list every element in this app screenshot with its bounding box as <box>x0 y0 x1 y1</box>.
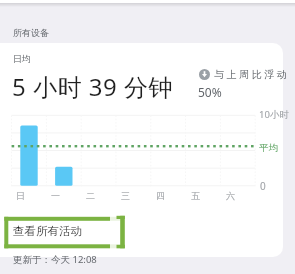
staticText: 日 <box>16 190 25 201</box>
staticText: 5 小时 39 分钟 <box>12 70 173 103</box>
staticText: 50% <box>198 84 222 100</box>
staticText: 平均 <box>259 142 278 154</box>
staticText: 六 <box>226 190 235 201</box>
staticText: 0 <box>260 179 266 193</box>
button[interactable]: 所有设备 <box>0 22 140 42</box>
staticText: 所有设备 <box>13 27 49 38</box>
staticText: 一 <box>51 190 60 201</box>
staticText: 三 <box>121 190 130 201</box>
staticText: 日均 <box>13 53 31 64</box>
staticText: 五 <box>191 190 200 201</box>
staticText: 二 <box>86 190 95 201</box>
staticText: 更新于：今天 12:08 <box>13 253 97 266</box>
staticText: 四 <box>156 190 165 201</box>
staticText: 查看所有活动 <box>13 224 82 238</box>
button[interactable]: 查看所有活动 <box>8 221 112 243</box>
staticText: 10小时 <box>259 108 289 121</box>
staticText: 与上周比浮动 <box>213 68 288 81</box>
other: 下降趋势 <box>199 69 210 80</box>
